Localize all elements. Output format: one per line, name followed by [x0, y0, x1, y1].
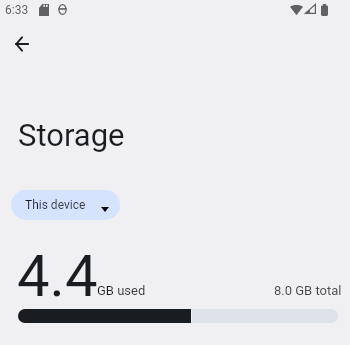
- staticText: 6:33: [5, 3, 29, 17]
- staticText: Storage: [18, 117, 125, 153]
- staticText: 4.4: [17, 242, 98, 310]
- button[interactable]: Back: [6, 28, 38, 60]
- staticText: GB used: [97, 283, 146, 298]
- staticText: 8.0 GB total: [274, 283, 342, 298]
- staticText: This device: [25, 198, 86, 212]
- button[interactable]: This device: [11, 190, 120, 220]
